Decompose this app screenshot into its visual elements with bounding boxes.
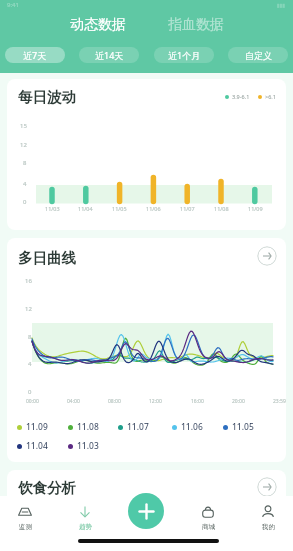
button[interactable]: View details — [257, 477, 277, 497]
staticText: 3.9-6.1 — [232, 93, 250, 100]
staticText: 08:00 — [108, 398, 121, 405]
staticText: 近7天 — [23, 49, 47, 61]
button[interactable]: 近7天 — [5, 47, 65, 63]
staticText: 11/08 — [214, 205, 229, 212]
staticText: 8 — [28, 333, 32, 341]
staticText: 20:00 — [232, 398, 245, 405]
staticText: 11.05 — [232, 421, 254, 433]
staticText: 12 — [20, 141, 27, 149]
staticText: 16 — [25, 277, 32, 285]
staticText: 0 — [23, 198, 27, 206]
staticText: 12:00 — [149, 398, 162, 405]
staticText: 16:00 — [191, 398, 204, 405]
staticText: 11/05 — [112, 205, 127, 212]
button[interactable]: 商城 — [186, 504, 230, 531]
staticText: 11.03 — [77, 440, 99, 452]
button[interactable]: 监测 — [3, 504, 47, 531]
staticText: ▮▮▮ — [277, 2, 286, 8]
button[interactable]: 趋势 — [63, 504, 107, 531]
button[interactable]: 动态数据 — [62, 13, 134, 37]
staticText: 近14天 — [95, 49, 124, 61]
staticText: 商城 — [202, 523, 215, 531]
staticText: 11/03 — [45, 205, 60, 212]
staticText: 11/06 — [146, 205, 161, 212]
staticText: 4 — [28, 360, 32, 368]
button[interactable]: 自定义 — [228, 47, 288, 63]
staticText: 我的 — [262, 523, 275, 531]
staticText: 多日曲线 — [18, 249, 76, 267]
staticText: 11/09 — [248, 205, 263, 212]
staticText: >6.1 — [265, 93, 276, 100]
staticText: 饮食分析 — [18, 479, 76, 497]
button[interactable]: View details — [257, 246, 277, 266]
staticText: 11.08 — [77, 421, 99, 433]
staticText: 0 — [28, 388, 32, 396]
staticText: 趋势 — [79, 523, 92, 531]
staticText: 11/04 — [78, 205, 93, 212]
staticText: 9:41 — [7, 1, 19, 9]
staticText: 11.09 — [26, 421, 48, 433]
staticText: 监测 — [19, 523, 32, 531]
staticText: 4 — [23, 180, 27, 188]
button[interactable]: 指血数据 — [160, 13, 232, 37]
staticText: 11.04 — [26, 440, 48, 452]
staticText: 自定义 — [245, 50, 272, 61]
staticText: 15 — [20, 122, 27, 130]
staticText: 11.06 — [181, 421, 203, 433]
staticText: 23:59 — [273, 398, 286, 405]
staticText: 04:00 — [67, 398, 80, 405]
button[interactable]: 近14天 — [79, 47, 139, 63]
button[interactable]: 近1个月 — [154, 47, 214, 63]
staticText: 11.07 — [127, 421, 149, 433]
staticText: 每日波动 — [18, 88, 76, 106]
button[interactable]: Add record — [128, 493, 164, 529]
staticText: 12 — [25, 305, 32, 313]
staticText: 11/07 — [180, 205, 195, 212]
staticText: 指血数据 — [168, 16, 224, 34]
staticText: 近1个月 — [168, 49, 201, 61]
staticText: 00:00 — [26, 398, 39, 405]
staticText: 动态数据 — [70, 16, 126, 34]
staticText: 8 — [23, 159, 27, 167]
button[interactable]: 我的 — [246, 504, 290, 531]
